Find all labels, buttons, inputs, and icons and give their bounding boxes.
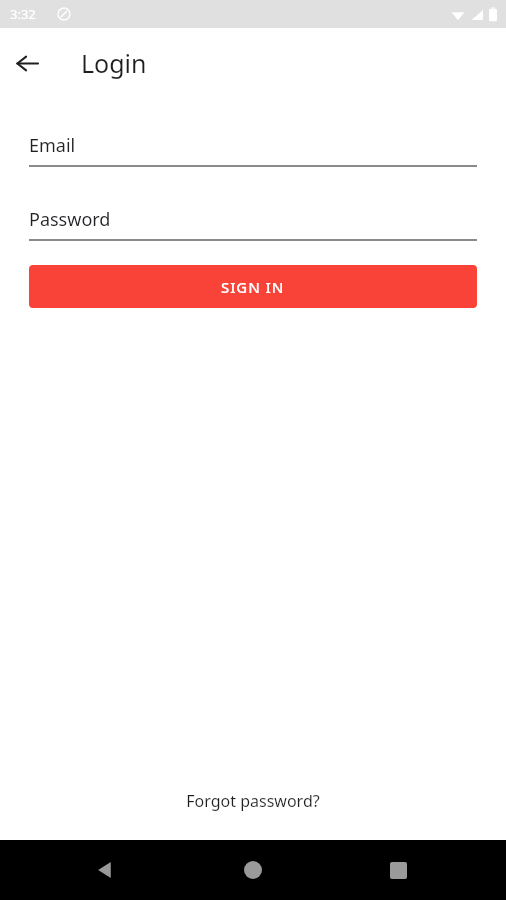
button[interactable]: Back (5, 41, 49, 85)
staticText: Login (81, 46, 147, 80)
button[interactable]: Recent apps (376, 848, 420, 892)
staticText: Email (29, 133, 76, 158)
staticText: SIGN IN (221, 277, 285, 297)
button[interactable]: Home (231, 848, 275, 892)
button[interactable]: Back (83, 848, 127, 892)
button[interactable]: SIGN IN (29, 265, 477, 308)
staticText: 3:32 (10, 5, 36, 23)
staticText: Forgot password? (186, 790, 320, 812)
button[interactable]: Password (29, 207, 477, 241)
button[interactable]: Email (29, 133, 477, 167)
staticText: Password (29, 207, 111, 232)
button[interactable]: Forgot password? (0, 790, 506, 812)
